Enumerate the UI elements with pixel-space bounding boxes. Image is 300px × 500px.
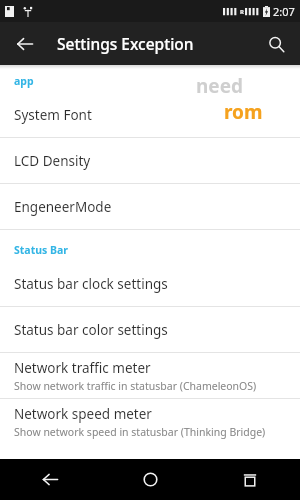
button[interactable]: Network traffic meter bbox=[0, 353, 300, 398]
button[interactable]: Search bbox=[260, 28, 292, 60]
staticText: Settings Exception bbox=[57, 33, 194, 54]
button[interactable]: Status bar color settings bbox=[0, 307, 300, 352]
staticText: EngeneerMode bbox=[14, 198, 112, 216]
staticText: Show network traffic in statusbar (Chame… bbox=[14, 379, 257, 393]
staticText: System Font bbox=[14, 106, 92, 124]
button[interactable]: EngeneerMode bbox=[0, 184, 300, 229]
staticText: Status bar color settings bbox=[14, 321, 168, 339]
button[interactable]: System Font bbox=[0, 92, 300, 137]
button[interactable]: Back bbox=[0, 459, 100, 500]
button[interactable]: Status bar clock settings bbox=[0, 261, 300, 306]
staticText: Status bar clock settings bbox=[14, 275, 168, 293]
button[interactable]: Home bbox=[100, 459, 200, 500]
button[interactable]: Back bbox=[10, 29, 40, 59]
staticText: R bbox=[240, 8, 244, 16]
button[interactable]: Network speed meter bbox=[0, 399, 300, 444]
staticText: app bbox=[14, 74, 34, 88]
staticText: need bbox=[196, 73, 244, 99]
staticText: LCD Density bbox=[14, 152, 91, 170]
staticText: rom bbox=[224, 99, 263, 121]
staticText: Network speed meter bbox=[14, 405, 152, 423]
staticText: Status Bar bbox=[14, 243, 68, 257]
staticText: Network traffic meter bbox=[14, 359, 151, 377]
button[interactable]: Recent apps bbox=[200, 459, 300, 500]
staticText: Show network speed in statusbar (Thinkin… bbox=[14, 425, 266, 439]
button[interactable]: LCD Density bbox=[0, 138, 300, 183]
staticText: 2:07 bbox=[273, 4, 295, 19]
